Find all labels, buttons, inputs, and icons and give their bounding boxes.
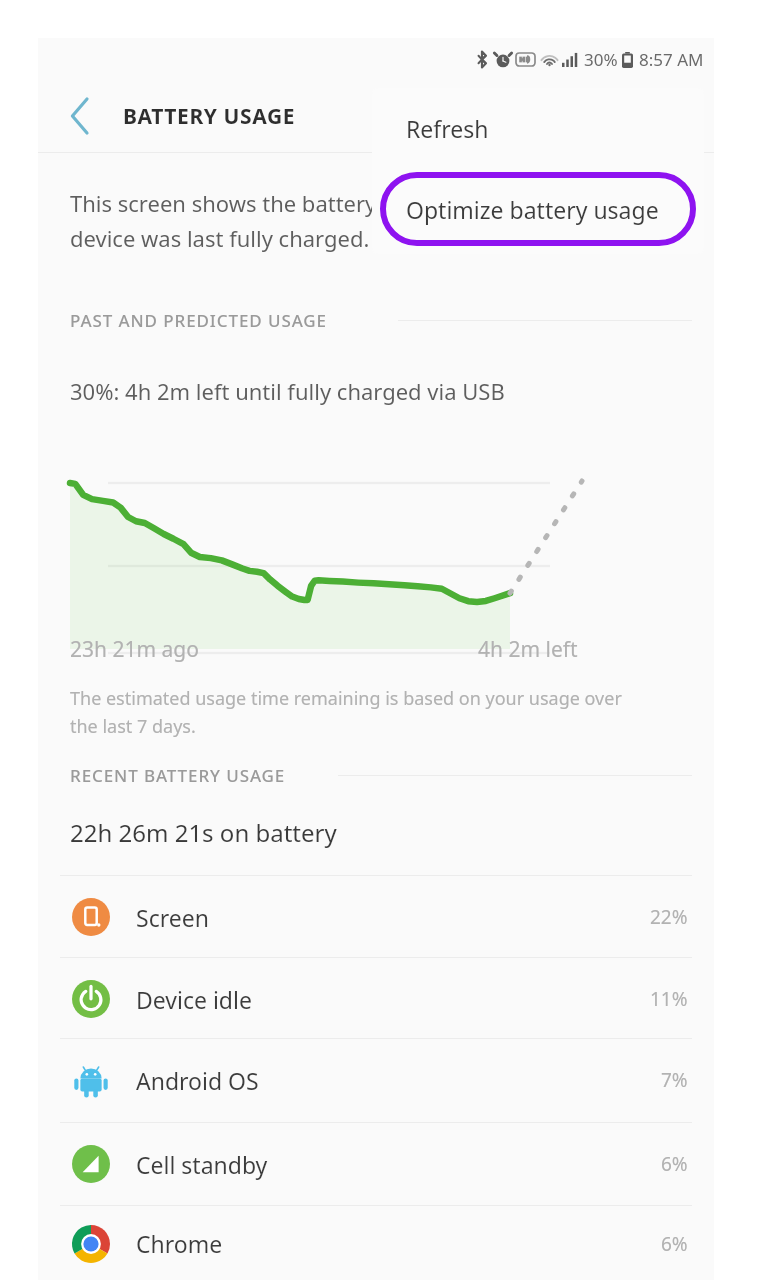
staticText: Screen [136,902,209,933]
button[interactable]: Optimize battery usage [383,175,693,243]
staticText: 4h 2m left [478,635,578,664]
staticText: 7% [661,1067,688,1093]
staticText: Refresh [406,113,489,144]
button[interactable]: Back [52,88,108,144]
staticText: 22% [650,904,688,930]
button[interactable]: Cell standby [38,1123,714,1205]
staticText: BATTERY USAGE [123,102,296,131]
staticText: 30%: 4h 2m left until fully charged via … [70,376,505,406]
staticText: 8:57 AM [639,48,704,71]
staticText: 6% [661,1151,688,1177]
staticText: 23h 21m ago [70,635,199,664]
button[interactable]: Refresh [372,88,704,168]
staticText: Chrome [136,1228,223,1259]
staticText: 22h 26m 21s on battery [70,816,337,849]
staticText: 30% [584,48,618,71]
staticText: The estimated usage time remaining is ba… [70,686,622,738]
button[interactable]: Device idle [38,958,714,1040]
staticText: Android OS [136,1065,259,1096]
button[interactable]: Chrome [38,1206,714,1280]
staticText: Cell standby [136,1149,268,1180]
staticText: 11% [650,986,688,1012]
staticText: RECENT BATTERY USAGE [70,764,286,787]
button[interactable]: Screen [38,876,714,958]
staticText: 6% [661,1231,688,1257]
staticText: This screen shows the battery usage sinc… [70,188,556,254]
staticText: PAST AND PREDICTED USAGE [70,309,327,332]
staticText: Optimize battery usage [406,194,659,225]
button[interactable]: Android OS [38,1039,714,1121]
staticText: Device idle [136,984,252,1015]
